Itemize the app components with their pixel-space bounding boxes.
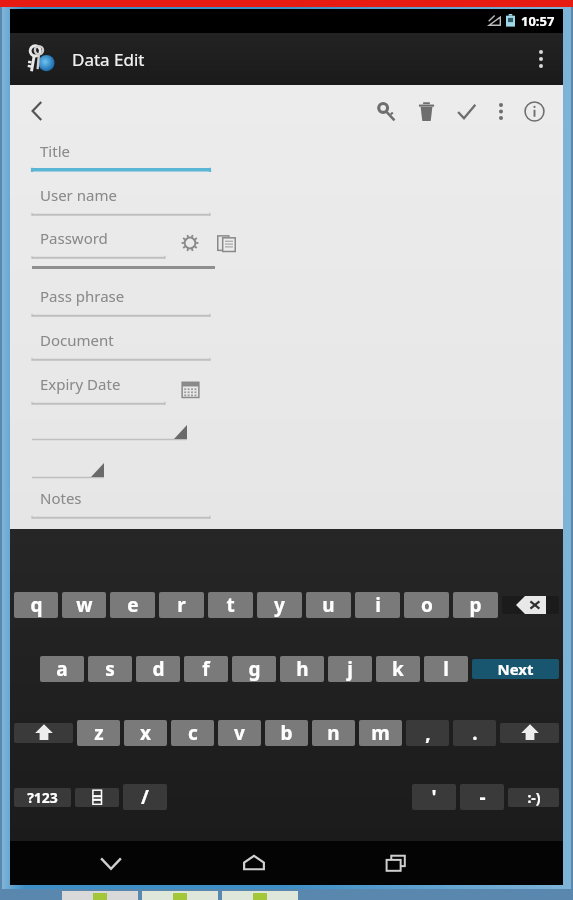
staticText: Password	[40, 228, 108, 248]
button[interactable]: f	[184, 656, 228, 682]
staticText: q	[30, 592, 43, 618]
staticText: a	[56, 656, 68, 682]
button[interactable]: ,	[406, 720, 449, 746]
staticText: t	[226, 592, 235, 618]
staticText: Notes	[40, 488, 82, 508]
staticText: b	[280, 720, 293, 746]
button[interactable]: n	[312, 720, 355, 746]
button[interactable]: u	[306, 592, 351, 618]
button[interactable]: ?123	[14, 788, 71, 807]
button[interactable]: More options	[489, 93, 513, 129]
button[interactable]: Copy	[211, 228, 241, 258]
button[interactable]: /	[123, 784, 167, 810]
button[interactable]: '	[412, 784, 456, 810]
staticText: g	[248, 656, 261, 682]
staticText: Document	[40, 330, 114, 350]
button[interactable]: Delete	[411, 93, 441, 129]
button[interactable]: m	[359, 720, 402, 746]
button[interactable]: Home	[226, 841, 282, 885]
button[interactable]: More options	[519, 33, 563, 85]
staticText: c	[188, 720, 198, 746]
button[interactable]: Notes	[32, 486, 210, 519]
staticText: :-)	[527, 788, 541, 807]
staticText: i	[375, 592, 381, 618]
staticText: 10:57	[521, 12, 555, 30]
staticText: ?123	[27, 788, 58, 807]
staticText: y	[274, 592, 285, 618]
staticText: d	[152, 656, 165, 682]
staticText: '	[431, 784, 437, 810]
button[interactable]: Generate	[175, 228, 205, 258]
button[interactable]: User name	[32, 183, 210, 216]
button[interactable]: Generate password	[371, 93, 401, 129]
button[interactable]: o	[404, 592, 449, 618]
button[interactable]	[32, 457, 104, 479]
staticText: j	[347, 656, 353, 682]
staticText: o	[421, 592, 433, 618]
button[interactable]: i	[355, 592, 400, 618]
staticText: l	[443, 656, 449, 682]
button[interactable]: Title	[32, 139, 210, 172]
staticText: Expiry Date	[40, 374, 121, 394]
button[interactable]: r	[159, 592, 204, 618]
staticText: ,	[425, 720, 431, 746]
staticText: u	[322, 592, 335, 618]
button[interactable]: y	[257, 592, 302, 618]
button[interactable]: Recent apps	[369, 841, 425, 885]
staticText: -	[479, 784, 486, 810]
staticText: m	[371, 720, 390, 746]
staticText: r	[177, 592, 186, 618]
button[interactable]: d	[136, 656, 180, 682]
button[interactable]: Pass phrase	[32, 284, 210, 317]
button[interactable]: a	[40, 656, 84, 682]
button[interactable]: Password	[32, 226, 165, 259]
button[interactable]: x	[124, 720, 167, 746]
button[interactable]: ⌸	[75, 788, 119, 807]
button[interactable]: b	[265, 720, 308, 746]
staticText: e	[127, 592, 139, 618]
staticText: p	[469, 592, 482, 618]
staticText: /	[141, 784, 149, 810]
button[interactable]: w	[62, 592, 106, 618]
button[interactable]: .	[453, 720, 496, 746]
staticText: Next	[497, 659, 534, 679]
button[interactable]: Shift	[500, 723, 559, 743]
button[interactable]: Next	[472, 659, 559, 679]
button[interactable]: Shift	[14, 723, 73, 743]
button[interactable]: k	[376, 656, 420, 682]
staticText: v	[234, 720, 245, 746]
staticText: h	[296, 656, 309, 682]
staticText: w	[76, 592, 93, 618]
button[interactable]: q	[14, 592, 58, 618]
button[interactable]: Info	[519, 93, 549, 129]
button[interactable]: Pick date	[175, 374, 205, 404]
staticText: Title	[40, 141, 70, 161]
staticText: .	[472, 720, 478, 746]
button[interactable]: j	[328, 656, 372, 682]
button[interactable]: z	[77, 720, 120, 746]
button[interactable]: :-)	[508, 788, 559, 807]
button[interactable]: p	[453, 592, 498, 618]
staticText: ⌸	[92, 788, 102, 807]
button[interactable]: g	[232, 656, 276, 682]
button[interactable]: h	[280, 656, 324, 682]
button[interactable]: l	[424, 656, 468, 682]
button[interactable]	[32, 419, 187, 441]
staticText: Pass phrase	[40, 286, 125, 306]
button[interactable]: Hide keyboard	[83, 841, 139, 885]
button[interactable]: -	[460, 784, 504, 810]
staticText: z	[94, 720, 104, 746]
button[interactable]: v	[218, 720, 261, 746]
staticText: x	[140, 720, 151, 746]
button[interactable]: Back	[16, 89, 60, 133]
button[interactable]: t	[208, 592, 253, 618]
staticText: s	[105, 656, 115, 682]
button[interactable]: c	[171, 720, 214, 746]
button[interactable]: Document	[32, 328, 210, 361]
button[interactable]: Save	[451, 93, 481, 129]
button[interactable]: Expiry Date	[32, 372, 165, 405]
button[interactable]: e	[110, 592, 155, 618]
button[interactable]: s	[88, 656, 132, 682]
staticText: Data Edit	[72, 48, 145, 71]
button[interactable]: Backspace	[502, 596, 559, 614]
